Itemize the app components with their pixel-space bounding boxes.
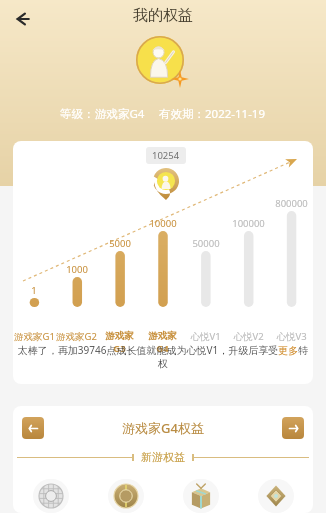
button[interactable]: Back <box>8 4 38 34</box>
button[interactable]: Privilege 1 <box>13 479 88 513</box>
staticText: 游戏家G4 <box>95 106 145 122</box>
staticText: 心悦V3 <box>276 330 307 343</box>
staticText: 800000 <box>275 197 308 210</box>
staticText: 有效期： <box>159 107 205 121</box>
staticText: 我的权益 <box>133 6 193 25</box>
button[interactable]: Privilege 4 <box>238 479 313 513</box>
button[interactable]: Previous <box>22 417 44 439</box>
staticText: G3 <box>113 342 126 355</box>
staticText: 游戏家G1 <box>14 330 55 343</box>
staticText: 游戏家 <box>105 330 134 342</box>
staticText: 5000 <box>109 237 131 250</box>
button[interactable]: Privilege 2 <box>88 479 163 513</box>
staticText: 心悦V1 <box>190 330 221 343</box>
staticText: G4 <box>156 342 169 355</box>
staticText: 等级： <box>60 107 95 121</box>
staticText: 游戏家G2 <box>56 330 97 343</box>
staticText: 游戏家 <box>148 330 177 342</box>
staticText: 1 <box>31 284 37 297</box>
staticText: 1000 <box>66 263 88 276</box>
button[interactable]: Next <box>282 417 304 439</box>
staticText: 10000 <box>149 217 177 230</box>
staticText: 2022-11-19 <box>205 106 266 122</box>
staticText: 50000 <box>192 237 220 250</box>
staticText: 10254 <box>152 149 180 162</box>
staticText: 100000 <box>232 217 265 230</box>
staticText: 游戏家G4权益 <box>122 419 204 437</box>
button[interactable]: Privilege 3 <box>163 479 238 513</box>
staticText: 太棒了，再加39746点成长值就能成为心悦V1，升级后享受更多特权 <box>13 343 313 370</box>
staticText: 心悦V2 <box>233 330 264 343</box>
staticText: 新游权益 <box>141 450 185 464</box>
